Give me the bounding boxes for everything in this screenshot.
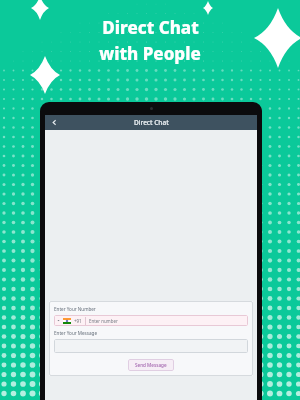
staticText: +91 bbox=[74, 318, 82, 324]
staticText: Enter Your Message bbox=[54, 330, 97, 336]
button[interactable] bbox=[54, 339, 248, 353]
staticText: with People bbox=[99, 42, 201, 65]
staticText: Enter number bbox=[89, 318, 118, 324]
staticText: Send Message bbox=[135, 362, 167, 368]
staticText: Direct Chat bbox=[134, 118, 169, 127]
button[interactable]: Send Message bbox=[128, 359, 174, 371]
button[interactable]: +91 bbox=[54, 315, 248, 326]
button[interactable]: Back bbox=[45, 115, 63, 130]
staticText: Direct Chat bbox=[102, 16, 199, 39]
staticText: Enter Your Number bbox=[54, 306, 96, 312]
